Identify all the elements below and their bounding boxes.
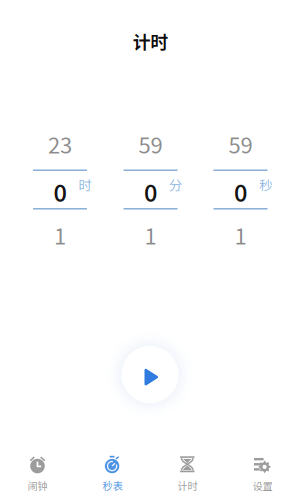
staticText: 59 [228, 128, 252, 160]
staticText: 1 [144, 219, 156, 251]
staticText: 时 [78, 175, 91, 194]
button[interactable]: 计时 [150, 446, 225, 500]
button[interactable]: 设置 [225, 446, 300, 500]
staticText: 1 [54, 219, 66, 251]
button[interactable]: 秒表 [75, 446, 150, 500]
staticText: 0 [234, 175, 247, 208]
staticText: 秒表 [102, 478, 122, 493]
staticText: 1 [234, 219, 246, 251]
staticText: 计时 [177, 478, 197, 493]
staticText: 0 [144, 175, 157, 208]
staticText: 23 [48, 128, 72, 160]
staticText: 秒 [259, 175, 272, 194]
staticText: 闹钟 [27, 478, 47, 493]
staticText: 计时 [132, 28, 168, 54]
button[interactable]: 闹钟 [0, 446, 75, 500]
button[interactable]: Start timer [107, 331, 193, 417]
staticText: 设置 [252, 478, 272, 493]
staticText: 0 [53, 175, 66, 208]
staticText: 59 [138, 128, 162, 160]
staticText: 分 [169, 175, 182, 194]
